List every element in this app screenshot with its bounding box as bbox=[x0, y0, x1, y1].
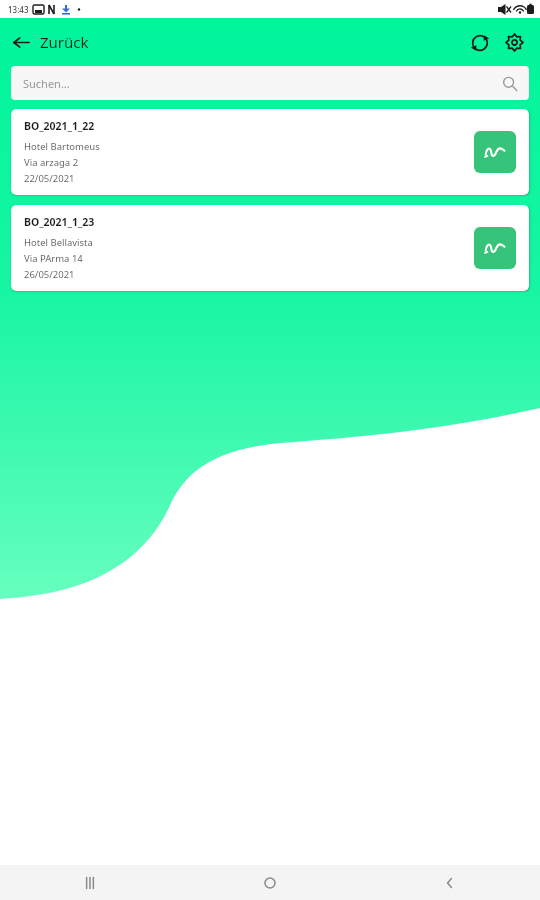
button[interactable]: BO_2021_1_23 bbox=[11, 205, 529, 291]
staticText: Suchen... bbox=[23, 76, 70, 91]
staticText: Via arzaga 2 bbox=[24, 156, 79, 169]
button[interactable]: Back bbox=[0, 27, 99, 57]
staticText: 13:43 bbox=[8, 4, 29, 15]
staticText: 26/05/2021 bbox=[24, 268, 75, 281]
staticText: Hotel Bellavista bbox=[24, 236, 93, 249]
staticText: 22/05/2021 bbox=[24, 172, 75, 185]
button[interactable]: Back bbox=[360, 865, 540, 900]
button[interactable]: Recents bbox=[0, 865, 180, 900]
button[interactable]: Suchen... bbox=[11, 66, 529, 100]
button[interactable]: Sign bbox=[474, 131, 516, 173]
other: Back bbox=[13, 34, 30, 51]
button[interactable]: Settings bbox=[499, 27, 530, 58]
staticText: Via PArma 14 bbox=[24, 252, 83, 265]
button[interactable]: Refresh bbox=[465, 28, 495, 58]
button[interactable]: Sign bbox=[474, 227, 516, 269]
staticText: Hotel Bartomeus bbox=[24, 140, 100, 153]
button[interactable]: Home bbox=[180, 865, 360, 900]
staticText: BO_2021_1_22 bbox=[24, 119, 95, 133]
staticText: Zurück bbox=[40, 32, 89, 52]
other: Search bbox=[502, 76, 517, 91]
button[interactable]: BO_2021_1_22 bbox=[11, 109, 529, 195]
staticText: BO_2021_1_23 bbox=[24, 215, 95, 229]
